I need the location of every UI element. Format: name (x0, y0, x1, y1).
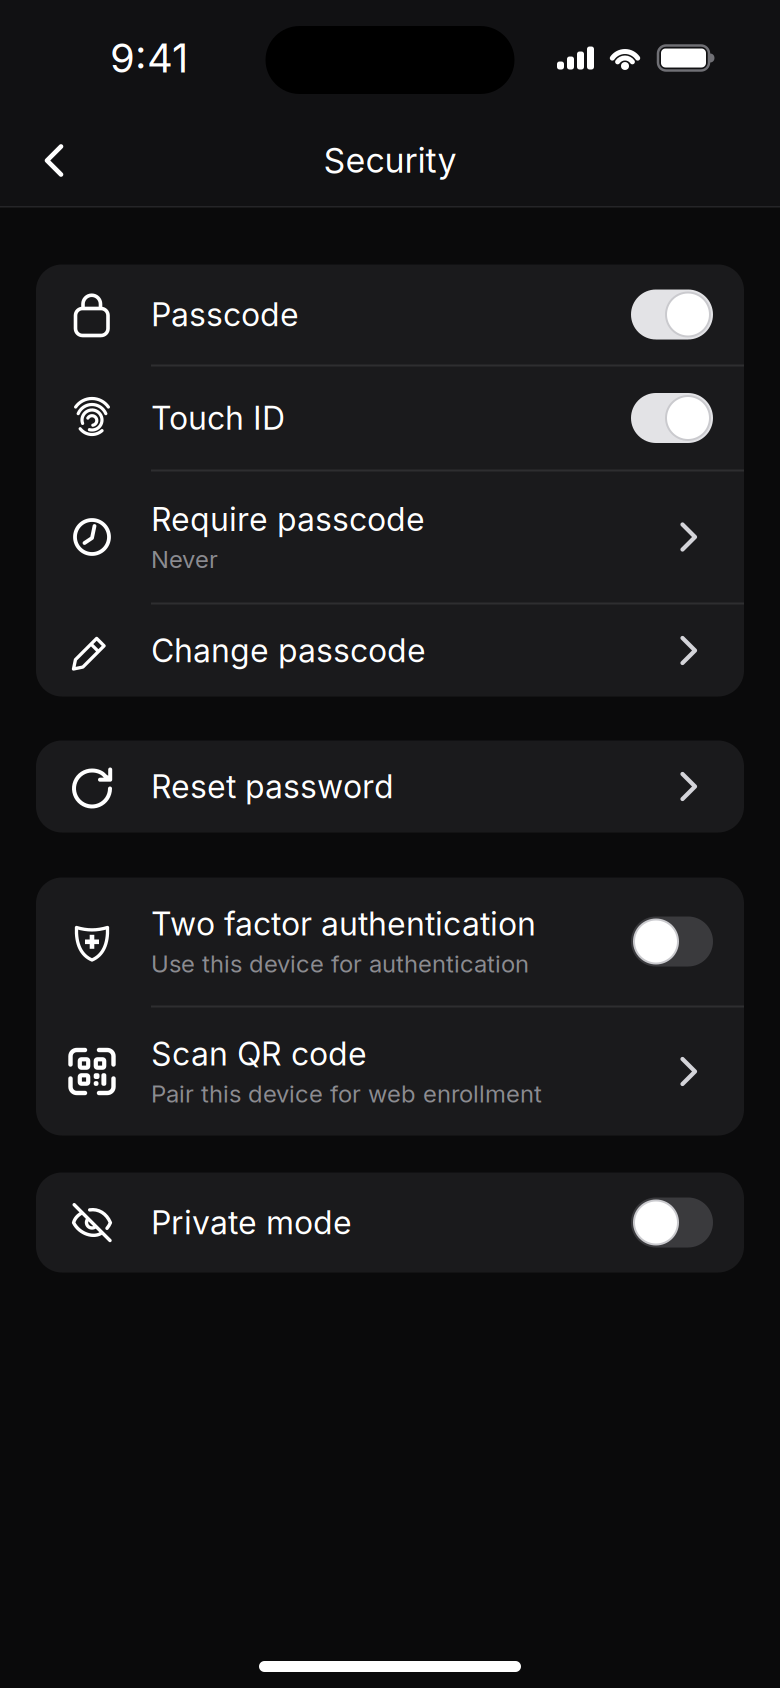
button[interactable]: Back (40, 144, 68, 177)
staticText: 9:41 (110, 34, 188, 82)
button[interactable]: Touch ID (36, 366, 744, 469)
staticText: Two factor authentication (151, 905, 536, 943)
staticText: Change passcode (151, 631, 426, 670)
button[interactable]: Two factor authentication (36, 877, 744, 1005)
staticText: Private mode (151, 1203, 352, 1242)
staticText: Never (151, 545, 218, 574)
button[interactable]: Passcode (36, 264, 744, 364)
button[interactable]: Reset password (36, 740, 744, 832)
button[interactable]: Scan QR code (36, 1007, 744, 1135)
staticText: Security (323, 140, 456, 181)
staticText: Touch ID (151, 399, 285, 437)
staticText: Scan QR code (151, 1035, 367, 1073)
staticText: Reset password (151, 767, 394, 806)
button[interactable]: Private mode (36, 1172, 744, 1272)
staticText: Use this device for authentication (151, 949, 529, 978)
staticText: Require passcode (151, 500, 425, 539)
button[interactable]: Change passcode (36, 604, 744, 696)
staticText: Pair this device for web enrollment (151, 1079, 542, 1108)
staticText: Passcode (151, 295, 299, 334)
button[interactable]: Require passcode (36, 471, 744, 602)
